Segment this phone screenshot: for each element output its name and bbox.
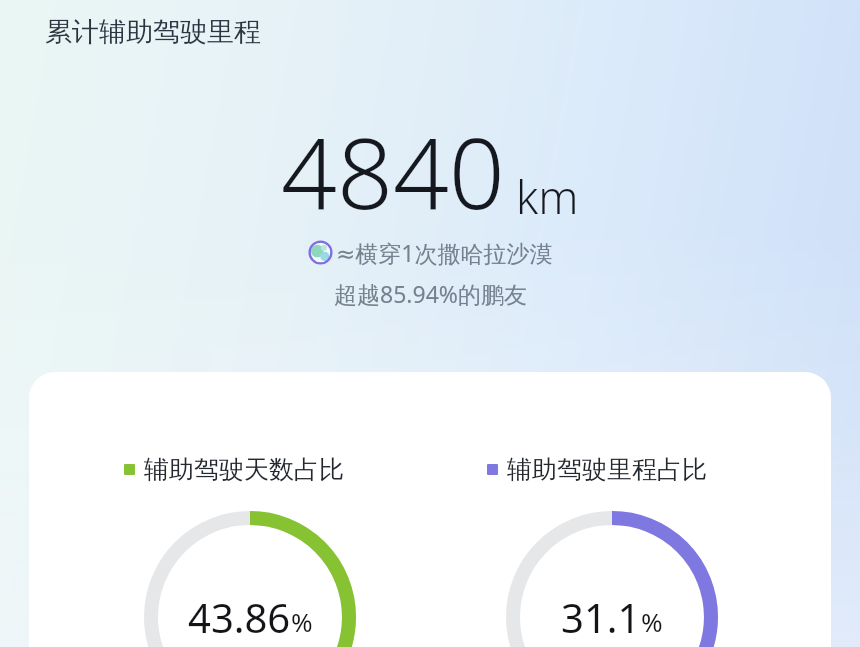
staticText: ≈横穿1次撒哈拉沙漠 <box>336 237 553 268</box>
staticText: 4840 <box>281 104 505 237</box>
staticText: 累计辅助驾驶里程 <box>45 15 261 49</box>
staticText: 43.86 <box>188 590 291 642</box>
staticText: km <box>516 166 579 227</box>
button[interactable]: 43.86 <box>140 590 360 642</box>
button[interactable] <box>29 372 831 647</box>
staticText: 31.1 <box>561 590 641 642</box>
other: Globe <box>308 240 333 265</box>
staticText: % <box>641 604 663 639</box>
staticText: 辅助驾驶里程占比 <box>507 454 707 485</box>
staticText: % <box>291 604 313 639</box>
button[interactable]: 31.1 <box>502 590 722 642</box>
button[interactable]: 辅助驾驶天数占比 <box>124 454 344 485</box>
staticText: 超越85.94%的鹏友 <box>334 278 527 309</box>
staticText: 辅助驾驶天数占比 <box>144 454 344 485</box>
button[interactable]: 辅助驾驶里程占比 <box>487 454 707 485</box>
